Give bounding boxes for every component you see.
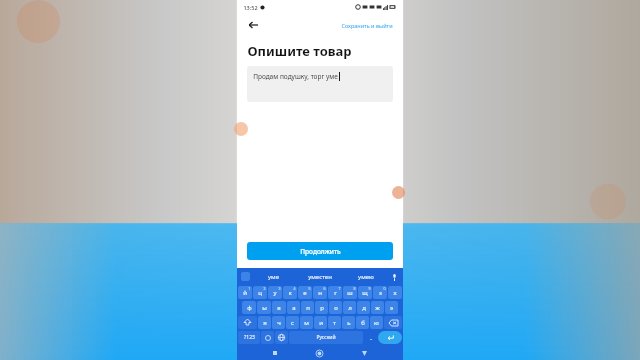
- button[interactable]: уме: [250, 268, 297, 285]
- staticText: 3: [278, 286, 281, 291]
- staticText: а: [292, 304, 296, 312]
- button[interactable]: Back: [245, 17, 261, 33]
- button[interactable]: у: [268, 286, 282, 299]
- staticText: умею: [358, 273, 374, 281]
- staticText: у: [273, 289, 277, 297]
- staticText: в: [277, 304, 281, 312]
- button[interactable]: Enter: [378, 331, 402, 344]
- button[interactable]: ф: [242, 301, 256, 314]
- button[interactable]: р: [315, 301, 328, 314]
- staticText: Продолжить: [300, 247, 341, 256]
- button[interactable]: ю: [370, 316, 383, 329]
- button[interactable]: б: [356, 316, 369, 329]
- staticText: р: [320, 304, 324, 312]
- button[interactable]: умею: [343, 268, 389, 285]
- staticText: о: [334, 304, 338, 312]
- staticText: е: [303, 289, 307, 297]
- button[interactable]: и: [314, 316, 327, 329]
- staticText: э: [390, 304, 393, 312]
- staticText: ю: [374, 319, 379, 327]
- button[interactable]: Change language: [275, 331, 288, 344]
- staticText: б: [361, 319, 365, 327]
- button[interactable]: л: [343, 301, 356, 314]
- button[interactable]: Home: [313, 347, 325, 359]
- staticText: 4: [293, 286, 296, 291]
- staticText: 5: [308, 286, 311, 291]
- button[interactable]: Продолжить: [247, 242, 393, 260]
- button[interactable]: в: [272, 301, 286, 314]
- button[interactable]: Back: [358, 347, 370, 359]
- button[interactable]: з: [373, 286, 387, 299]
- staticText: Опишите товар: [247, 42, 352, 60]
- staticText: 7: [338, 286, 341, 291]
- button[interactable]: о: [329, 301, 342, 314]
- button[interactable]: ц: [253, 286, 267, 299]
- staticText: д: [362, 304, 366, 312]
- button[interactable]: Русский: [289, 331, 363, 344]
- staticText: .: [370, 334, 372, 342]
- button[interactable]: к: [283, 286, 297, 299]
- button[interactable]: уместен: [297, 268, 343, 285]
- button[interactable]: Keyboard menu: [241, 272, 250, 281]
- staticText: и: [319, 319, 323, 327]
- staticText: т: [333, 319, 336, 327]
- staticText: л: [348, 304, 352, 312]
- staticText: ж: [375, 304, 380, 312]
- button[interactable]: Продам подушку, торг уме: [247, 66, 393, 102]
- button[interactable]: Voice input: [389, 272, 399, 282]
- staticText: ф: [247, 304, 252, 312]
- staticText: Продам подушку, торг уме: [253, 72, 338, 81]
- button[interactable]: Backspace: [384, 316, 402, 329]
- staticText: м: [304, 319, 309, 327]
- button[interactable]: щ: [358, 286, 372, 299]
- staticText: с: [291, 319, 294, 327]
- staticText: щ: [362, 289, 368, 297]
- button[interactable]: ы: [257, 301, 271, 314]
- staticText: 8: [353, 286, 356, 291]
- button[interactable]: .: [364, 331, 377, 344]
- staticText: ?123: [244, 334, 255, 341]
- staticText: уместен: [308, 273, 332, 281]
- button[interactable]: п: [301, 301, 314, 314]
- staticText: ц: [258, 289, 262, 297]
- button[interactable]: Recents: [269, 347, 281, 359]
- staticText: 9: [368, 286, 371, 291]
- button[interactable]: г: [328, 286, 342, 299]
- button[interactable]: я: [258, 316, 271, 329]
- staticText: ы: [262, 304, 267, 312]
- button[interactable]: м: [300, 316, 313, 329]
- staticText: я: [263, 319, 267, 327]
- button[interactable]: ?123: [238, 331, 260, 344]
- staticText: н: [318, 289, 322, 297]
- button[interactable]: т: [328, 316, 341, 329]
- staticText: 0: [383, 286, 386, 291]
- staticText: 6: [323, 286, 326, 291]
- button[interactable]: д: [357, 301, 370, 314]
- button[interactable]: ч: [272, 316, 285, 329]
- staticText: 2: [263, 286, 266, 291]
- staticText: уме: [268, 273, 279, 281]
- button[interactable]: Emoji: [261, 331, 274, 344]
- button[interactable]: ь: [342, 316, 355, 329]
- staticText: ч: [277, 319, 281, 327]
- button[interactable]: а: [287, 301, 300, 314]
- staticText: 13:52: [243, 4, 258, 11]
- staticText: з: [379, 289, 382, 297]
- staticText: 1: [248, 286, 251, 291]
- button[interactable]: Shift: [238, 316, 257, 329]
- staticText: п: [306, 304, 310, 312]
- staticText: Русский: [316, 334, 336, 341]
- button[interactable]: й: [238, 286, 252, 299]
- button[interactable]: с: [286, 316, 299, 329]
- button[interactable]: е: [298, 286, 312, 299]
- button[interactable]: ш: [343, 286, 357, 299]
- button[interactable]: ж: [371, 301, 384, 314]
- button[interactable]: х: [388, 286, 402, 299]
- staticText: к: [288, 289, 292, 297]
- button[interactable]: н: [313, 286, 327, 299]
- staticText: ш: [347, 289, 353, 297]
- button[interactable]: Сохранить и выйти: [339, 20, 395, 31]
- staticText: ь: [347, 319, 351, 327]
- button[interactable]: э: [385, 301, 398, 314]
- staticText: г: [334, 289, 337, 297]
